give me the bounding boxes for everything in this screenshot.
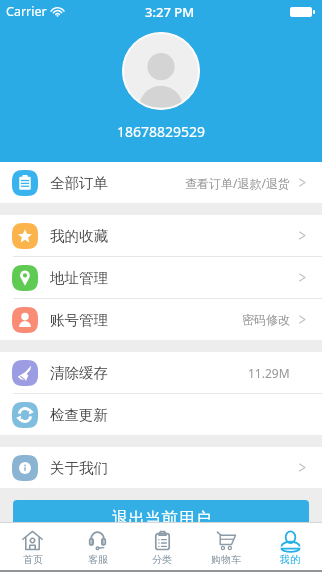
- staticText: 地址管理: [50, 269, 108, 287]
- button[interactable]: 首页: [0, 523, 65, 570]
- button[interactable]: 退出当前用户: [13, 500, 309, 536]
- staticText: 18678829529: [0, 122, 322, 141]
- staticText: 退出当前用户: [112, 508, 211, 529]
- staticText: 购物车: [211, 553, 241, 566]
- button[interactable]: 购物车: [194, 523, 258, 570]
- staticText: 3:27 PM: [145, 3, 195, 20]
- staticText: 清除缓存: [50, 364, 108, 382]
- staticText: 密码修改: [242, 312, 290, 327]
- staticText: 关于我们: [50, 459, 108, 477]
- staticText: 查看订单/退款/退货: [185, 175, 290, 191]
- button[interactable]: 客服: [65, 523, 130, 570]
- button[interactable]: Avatar: [122, 32, 200, 110]
- staticText: 客服: [88, 553, 108, 566]
- button[interactable]: 账号管理: [0, 299, 322, 340]
- staticText: 账号管理: [50, 311, 108, 329]
- staticText: 首页: [23, 553, 43, 566]
- staticText: 11.29M: [248, 365, 290, 381]
- staticText: Carrier: [6, 3, 47, 20]
- button[interactable]: 检查更新: [0, 394, 322, 435]
- button[interactable]: 分类: [130, 523, 194, 570]
- staticText: 我的: [280, 553, 300, 566]
- button[interactable]: 全部订单: [0, 162, 322, 203]
- button[interactable]: 关于我们: [0, 447, 322, 488]
- staticText: 分类: [152, 553, 172, 566]
- button[interactable]: 清除缓存: [0, 352, 322, 393]
- button[interactable]: 我的: [258, 523, 322, 570]
- button[interactable]: 地址管理: [0, 257, 322, 298]
- button[interactable]: 我的收藏: [0, 215, 322, 256]
- staticText: 检查更新: [50, 406, 108, 424]
- staticText: 全部订单: [50, 174, 108, 192]
- staticText: 我的收藏: [50, 227, 108, 245]
